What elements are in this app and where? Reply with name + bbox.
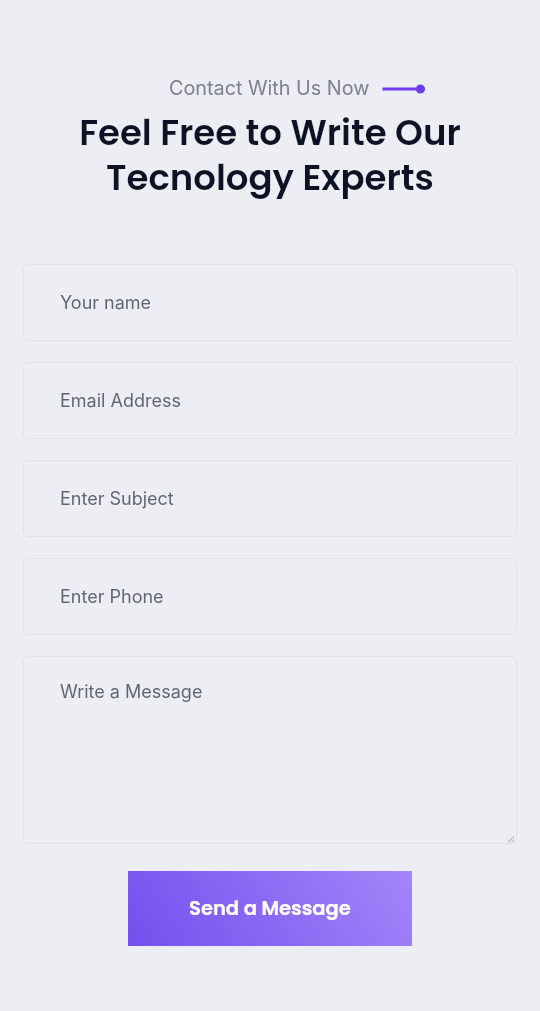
button[interactable]: Write a Message [23,656,517,844]
staticText: Feel Free to Write Our Tecnology Experts [0,108,540,202]
staticText: Enter Phone [60,586,164,608]
button[interactable]: Send a Message [128,871,412,946]
button[interactable]: Email Address [23,362,517,439]
button[interactable]: Your name [23,264,517,341]
button[interactable]: Enter Phone [23,558,517,635]
button[interactable]: Enter Subject [23,460,517,537]
staticText: Email Address [60,390,181,412]
staticText: Enter Subject [60,488,174,510]
staticText: Your name [60,292,152,314]
staticText: Write a Message [60,681,203,703]
staticText: Contact With Us Now [169,76,370,100]
staticText: Send a Message [189,895,351,922]
